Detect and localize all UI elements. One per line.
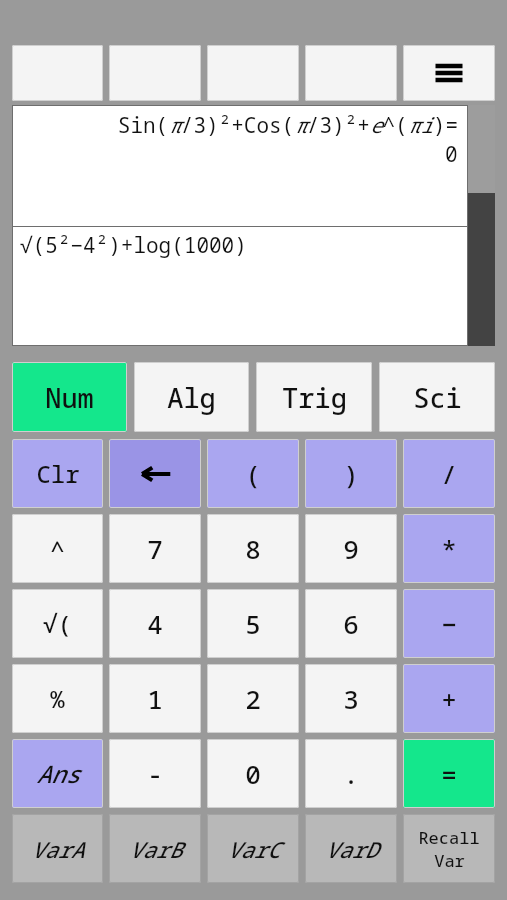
staticText: √( xyxy=(43,607,72,640)
staticText: 9 xyxy=(343,531,359,566)
staticText: . xyxy=(343,756,359,791)
staticText: ( xyxy=(245,456,261,491)
button[interactable]: VarA xyxy=(12,814,103,883)
button[interactable]: 0 xyxy=(207,739,299,808)
button[interactable]: √( xyxy=(12,589,103,658)
button[interactable]: 2 xyxy=(207,664,299,733)
button[interactable]: − xyxy=(403,589,495,658)
staticText: 1 xyxy=(147,681,163,716)
button[interactable]: 4 xyxy=(109,589,201,658)
button[interactable]: Toolbar action xyxy=(109,45,201,101)
button[interactable]: Clr xyxy=(12,439,103,508)
staticText: 0 xyxy=(445,140,458,169)
staticText: Num xyxy=(45,379,94,416)
button[interactable]: √(5²−4²)+log(1000) xyxy=(12,227,468,346)
button[interactable]: 3 xyxy=(305,664,397,733)
button[interactable]: VarC xyxy=(207,814,299,883)
staticText: 8 xyxy=(245,531,261,566)
button[interactable]: = xyxy=(403,739,495,808)
button[interactable]: + xyxy=(403,664,495,733)
staticText: ^ xyxy=(50,532,65,565)
button[interactable]: Toolbar action xyxy=(207,45,299,101)
staticText: VarD xyxy=(325,834,378,864)
button[interactable]: Recall xyxy=(403,814,495,883)
button[interactable]: Trig xyxy=(256,362,372,432)
button[interactable]: % xyxy=(12,664,103,733)
button[interactable]: * xyxy=(403,514,495,583)
button[interactable]: - xyxy=(109,739,201,808)
button[interactable]: ( xyxy=(207,439,299,508)
staticText: √(5²−4²)+log(1000) xyxy=(20,231,247,260)
button[interactable]: 8 xyxy=(207,514,299,583)
staticText: 2 xyxy=(245,681,261,716)
staticText: + xyxy=(441,681,457,716)
staticText: Recall xyxy=(418,826,480,849)
staticText: − xyxy=(441,606,457,641)
staticText: 7 xyxy=(147,531,163,566)
button[interactable]: Toolbar action xyxy=(305,45,397,101)
staticText: ) xyxy=(343,456,359,491)
button[interactable]: Menu xyxy=(403,45,495,101)
staticText: 0 xyxy=(245,756,261,791)
staticText: 6 xyxy=(343,606,359,641)
button[interactable]: VarB xyxy=(109,814,201,883)
staticText: VarB xyxy=(129,834,182,864)
staticText: % xyxy=(50,682,65,715)
button[interactable]: Sin(π/3)²+Cos(π/3)²+e^(πi)= xyxy=(12,105,468,226)
staticText: Trig xyxy=(282,379,347,416)
staticText: 3 xyxy=(343,681,359,716)
button[interactable]: 1 xyxy=(109,664,201,733)
button[interactable]: / xyxy=(403,439,495,508)
button[interactable]: ^ xyxy=(12,514,103,583)
button[interactable]: Ans xyxy=(12,739,103,808)
staticText: Clr xyxy=(36,457,80,490)
button[interactable]: 5 xyxy=(207,589,299,658)
staticText: / xyxy=(441,456,457,491)
staticText: = xyxy=(441,756,457,791)
staticText: * xyxy=(441,531,457,566)
staticText: Alg xyxy=(167,379,216,416)
staticText: Ans xyxy=(36,757,80,790)
staticText: 5 xyxy=(245,606,261,641)
button[interactable]: Toolbar action xyxy=(12,45,103,101)
button[interactable]: 7 xyxy=(109,514,201,583)
staticText: Sin(π/3)²+Cos(π/3)²+e^(πi)= xyxy=(117,111,458,140)
button[interactable]: Sci xyxy=(379,362,495,432)
button[interactable]: . xyxy=(305,739,397,808)
button[interactable]: Backspace xyxy=(109,439,201,508)
staticText: VarC xyxy=(227,834,280,864)
button[interactable]: Num xyxy=(12,362,127,432)
staticText: 4 xyxy=(147,606,163,641)
button[interactable]: VarD xyxy=(305,814,397,883)
button[interactable]: 6 xyxy=(305,589,397,658)
button[interactable]: ) xyxy=(305,439,397,508)
staticText: - xyxy=(147,756,163,791)
button[interactable]: Alg xyxy=(134,362,249,432)
staticText: VarA xyxy=(31,834,84,864)
button[interactable]: 9 xyxy=(305,514,397,583)
staticText: Var xyxy=(434,849,465,872)
staticText: Sci xyxy=(413,379,462,416)
